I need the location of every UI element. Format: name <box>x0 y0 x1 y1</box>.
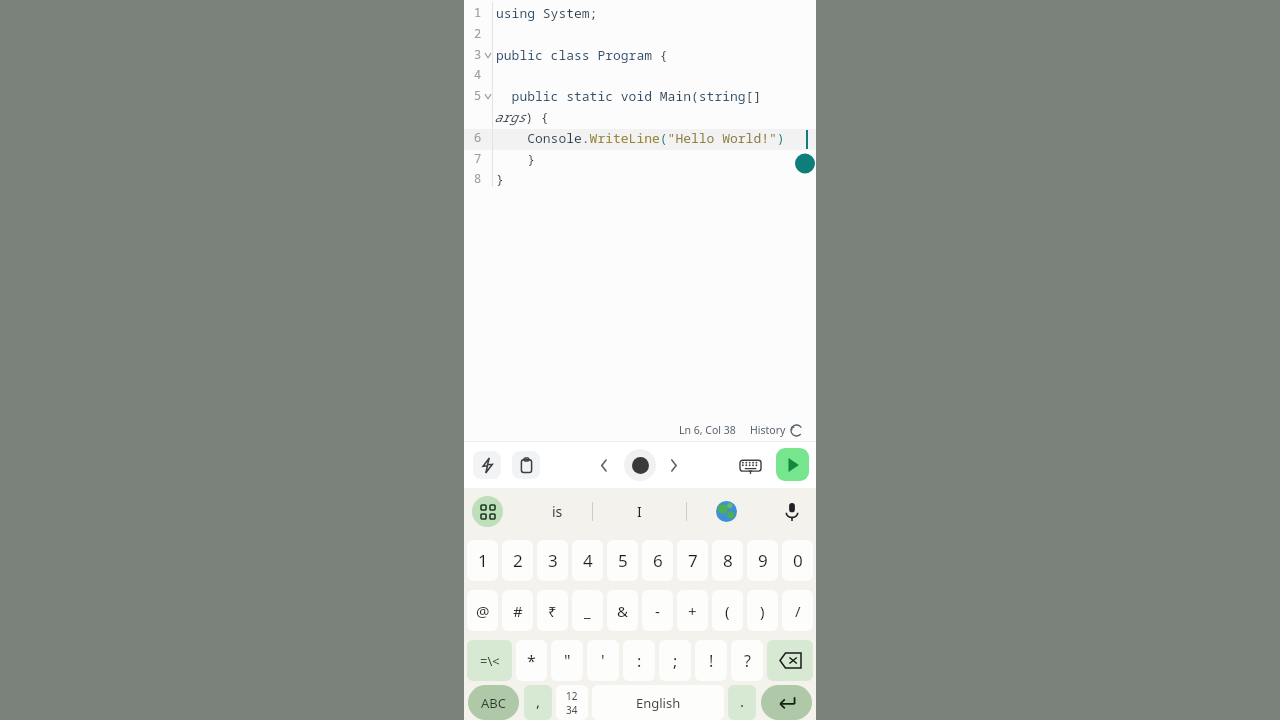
staticText: - <box>655 601 660 621</box>
staticText: 7 <box>688 549 698 572</box>
staticText: 9 <box>758 549 768 572</box>
staticText: 3 <box>548 549 558 572</box>
button[interactable]: Quick actions <box>473 451 501 479</box>
staticText: using System; <box>496 4 598 22</box>
staticText: args) { <box>494 108 549 126</box>
button[interactable]: * <box>516 640 547 681</box>
button[interactable]: Cursor <box>624 449 656 481</box>
staticText: } <box>496 150 536 168</box>
staticText: ( <box>725 601 730 621</box>
staticText: 2 <box>513 549 523 572</box>
staticText: 34 <box>566 703 578 717</box>
staticText: 8 <box>474 170 482 186</box>
staticText: 4 <box>474 66 482 82</box>
button[interactable]: _ <box>572 590 603 631</box>
button[interactable]: ! <box>695 640 727 681</box>
staticText: ' <box>601 650 605 672</box>
staticText: History <box>750 423 786 437</box>
staticText: 4 <box>583 549 593 572</box>
staticText: Console.WriteLine("Hello World!") <box>496 129 785 147</box>
button[interactable]: / <box>782 590 813 631</box>
button[interactable]: ) <box>747 590 778 631</box>
button[interactable]: =\< <box>467 640 512 681</box>
button[interactable]: More <box>472 496 503 527</box>
button[interactable]: : <box>623 640 655 681</box>
button[interactable]: 6 <box>642 540 673 581</box>
staticText: ₹ <box>548 601 557 621</box>
button[interactable]: I <box>604 488 674 535</box>
button[interactable]: 8 <box>712 540 743 581</box>
staticText: @ <box>476 601 490 621</box>
button[interactable]: Previous <box>592 452 618 478</box>
staticText: ! <box>709 650 714 672</box>
button[interactable]: 3 <box>537 540 568 581</box>
button[interactable]: 2 <box>502 540 533 581</box>
staticText: ? <box>744 650 751 672</box>
staticText: 3 <box>474 46 482 62</box>
button[interactable]: 0 <box>782 540 813 581</box>
staticText: 6 <box>474 129 482 145</box>
button[interactable]: 9 <box>747 540 778 581</box>
button[interactable]: is <box>522 488 592 535</box>
button[interactable]: . <box>728 685 756 720</box>
staticText: public static void Main(string[] <box>496 87 762 105</box>
button[interactable]: ( <box>712 590 743 631</box>
staticText: 7 <box>474 150 482 166</box>
staticText: Ln 6, Col 38 <box>679 423 736 437</box>
button[interactable]: ' <box>587 640 619 681</box>
staticText: ) <box>760 601 765 621</box>
staticText: 12 <box>566 689 578 703</box>
staticText: =\< <box>480 652 500 670</box>
button[interactable]: Backspace <box>767 640 813 681</box>
staticText: + <box>688 601 697 621</box>
staticText: is <box>552 502 563 521</box>
button[interactable]: Paste <box>512 451 540 479</box>
staticText: ; <box>673 650 678 672</box>
staticText: 5 <box>618 549 628 572</box>
button[interactable]: @ <box>467 590 498 631</box>
button[interactable]: ABC <box>468 685 519 720</box>
button[interactable]: + <box>677 590 708 631</box>
button[interactable]: 5 <box>607 540 638 581</box>
button[interactable]: ₹ <box>537 590 568 631</box>
staticText: 2 <box>474 25 482 41</box>
button[interactable]: Voice input <box>780 500 803 523</box>
button[interactable]: # <box>502 590 533 631</box>
staticText: ABC <box>481 694 506 712</box>
staticText: / <box>795 601 801 621</box>
staticText: 1 <box>474 4 482 20</box>
staticText: I <box>637 502 642 521</box>
staticText: * <box>527 650 536 672</box>
button[interactable]: Language <box>716 501 737 522</box>
button[interactable]: Run <box>776 448 809 481</box>
button[interactable]: Enter <box>761 685 812 720</box>
staticText: , <box>536 691 541 711</box>
staticText: # <box>513 601 523 621</box>
staticText: 6 <box>653 549 663 572</box>
staticText: 1 <box>478 549 488 572</box>
button[interactable]: ; <box>659 640 691 681</box>
button[interactable]: & <box>607 590 638 631</box>
button[interactable]: English <box>592 685 724 720</box>
button[interactable]: 4 <box>572 540 603 581</box>
button[interactable]: 1 <box>467 540 498 581</box>
staticText: : <box>637 650 642 672</box>
button[interactable]: , <box>524 685 552 720</box>
button[interactable]: " <box>551 640 583 681</box>
button[interactable]: - <box>642 590 673 631</box>
button[interactable]: 7 <box>677 540 708 581</box>
staticText: & <box>617 601 628 621</box>
button[interactable]: Keyboard <box>736 452 764 480</box>
button[interactable]: Numbers <box>556 685 588 720</box>
staticText: 5 <box>474 87 482 103</box>
button[interactable]: ? <box>731 640 763 681</box>
staticText: public class Program { <box>496 46 668 64</box>
staticText: 8 <box>723 549 733 572</box>
staticText: " <box>564 650 571 672</box>
button[interactable]: History <box>748 423 804 437</box>
staticText: } <box>496 170 504 188</box>
staticText: 0 <box>793 549 803 572</box>
staticText: English <box>636 694 681 712</box>
button[interactable]: Next <box>662 452 688 478</box>
staticText: . <box>740 691 745 711</box>
